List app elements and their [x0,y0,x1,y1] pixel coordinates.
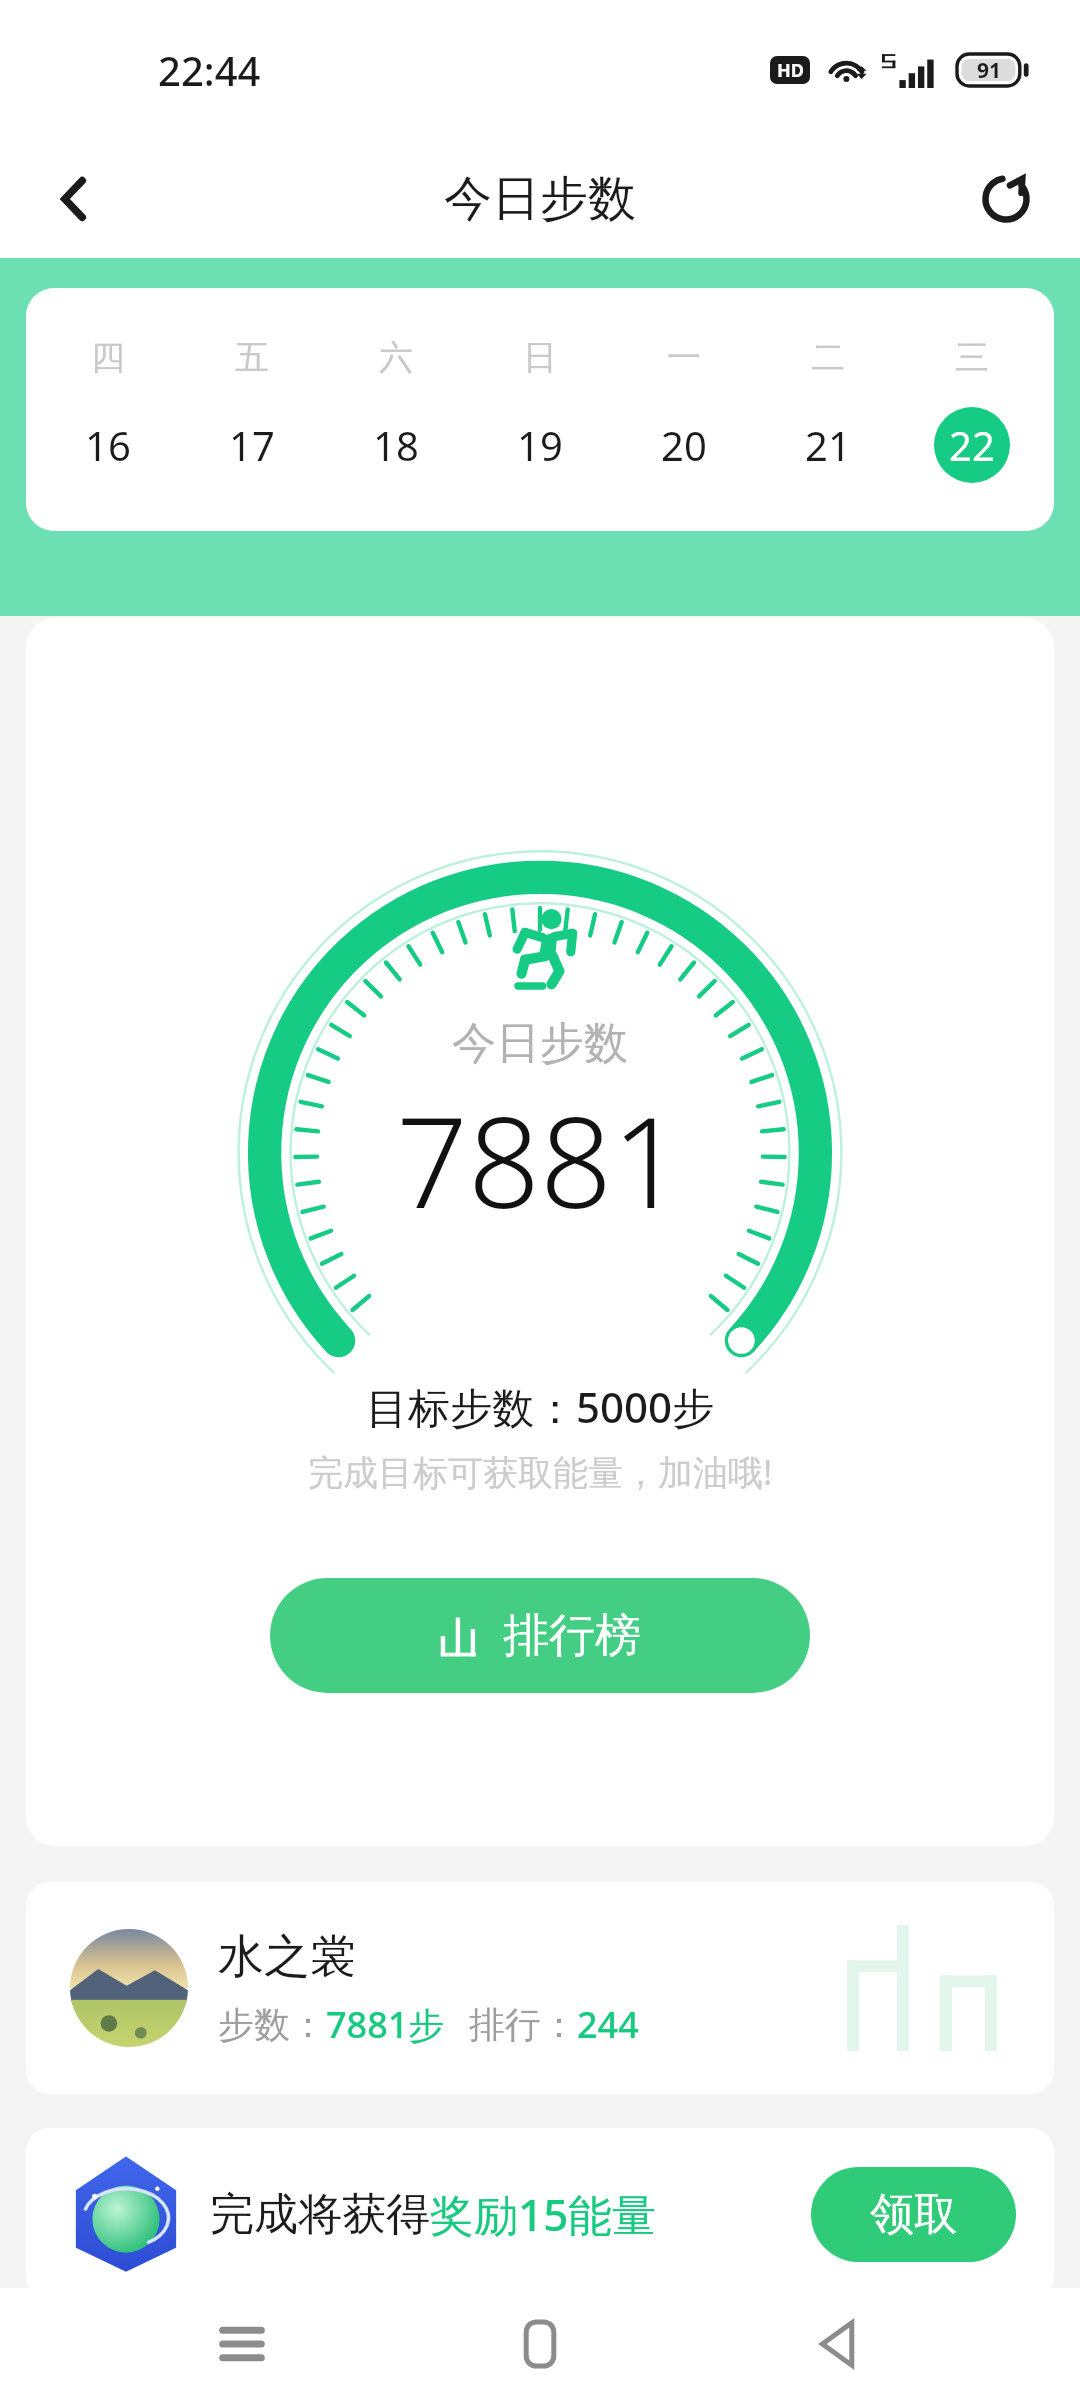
button[interactable]: 领取 [811,2167,1016,2262]
staticText: 排行榜 [503,1607,641,1665]
staticText: 二 [811,336,845,379]
button[interactable]: Back [26,151,122,247]
button[interactable]: Home [484,2288,596,2400]
button[interactable]: 五 [180,336,324,483]
staticText: HD [777,58,804,83]
button[interactable]: Back [782,2288,894,2400]
button[interactable]: 一 [612,336,756,483]
staticText: 步数： [218,2002,326,2047]
staticText: 7881 [396,1073,684,1245]
button[interactable]: 二 [756,336,900,483]
staticText: 7881步 [326,2000,445,2049]
staticText: 20 [661,418,707,472]
staticText: 五 [235,336,269,379]
staticText: 完成将获得 [210,2187,430,2242]
button[interactable]: 六 [324,336,468,483]
staticText: 19 [517,418,563,472]
staticText: 21 [805,418,851,472]
button[interactable]: 三 [900,336,1044,483]
staticText: 排行： [469,2002,577,2047]
button[interactable]: Refresh [958,151,1054,247]
staticText: 领取 [870,2187,958,2242]
staticText: 日 [523,336,557,379]
staticText: 今日步数 [444,169,636,229]
staticText: 奖励15能量 [430,2184,657,2244]
staticText: 四 [91,336,125,379]
staticText: 三 [955,336,989,379]
staticText: 17 [229,418,275,472]
staticText: 一 [667,336,701,379]
staticText: 244 [577,2000,639,2049]
button[interactable]: 排行榜 [270,1578,810,1693]
button[interactable]: 水之裳 [26,1882,1054,2094]
button[interactable]: 四 [36,336,180,483]
staticText: 六 [379,336,413,379]
staticText: 18 [373,418,419,472]
staticText: 今日步数 [452,1016,628,1071]
staticText: 水之裳 [218,1928,356,1986]
staticText: 22:44 [158,43,261,97]
button[interactable]: 日 [468,336,612,483]
staticText: 22 [949,418,995,472]
button[interactable]: Recents [186,2288,298,2400]
staticText: 16 [85,418,131,472]
staticText: 目标步数：5000步 [366,1378,715,1435]
staticText: 完成目标可获取能量，加油哦! [308,1448,773,1496]
staticText: 91 [977,56,1002,85]
